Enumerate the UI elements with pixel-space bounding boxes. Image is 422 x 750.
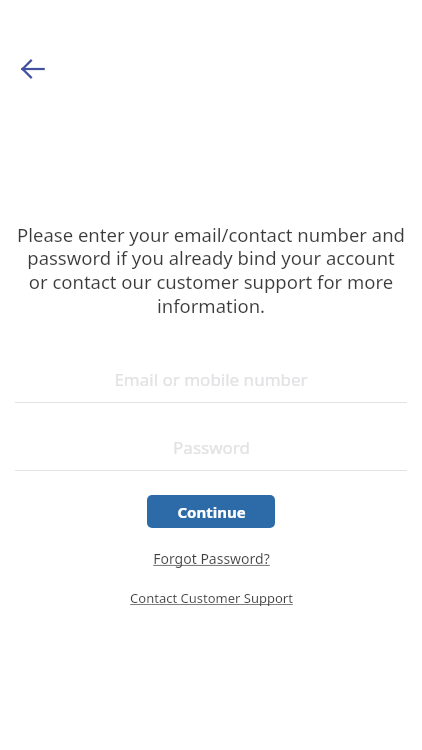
staticText: Please enter your email/contact number a…: [16, 222, 406, 319]
button[interactable]: Password: [0, 424, 422, 470]
button[interactable]: Contact Customer Support: [0, 589, 422, 607]
button[interactable]: Email or mobile number: [0, 356, 422, 402]
staticText: Forgot Password?: [153, 549, 270, 568]
staticText: Password: [173, 436, 250, 459]
staticText: Continue: [177, 502, 246, 522]
staticText: Email or mobile number: [114, 368, 308, 391]
button[interactable]: Back: [14, 50, 52, 88]
button[interactable]: Forgot Password?: [0, 549, 422, 568]
button[interactable]: Continue: [147, 495, 275, 528]
staticText: Contact Customer Support: [130, 589, 293, 607]
